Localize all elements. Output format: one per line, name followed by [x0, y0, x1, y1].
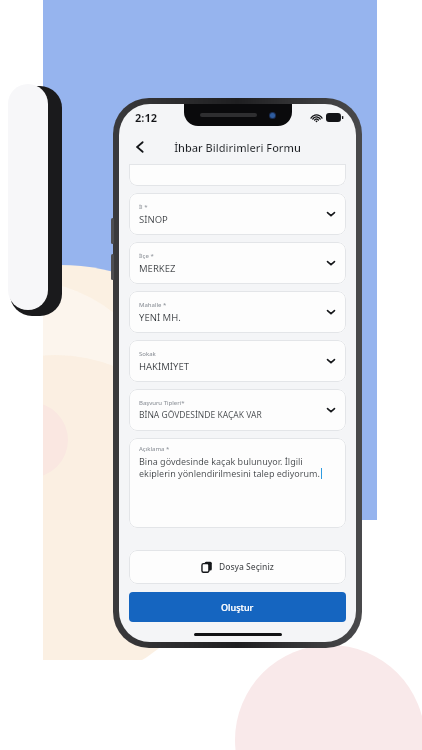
button[interactable]: Back [125, 132, 155, 162]
staticText: HAKİMİYET [139, 360, 189, 373]
staticText: İlçe * [139, 252, 154, 260]
button[interactable]: Sokak [129, 340, 346, 382]
button[interactable]: Oluştur [129, 592, 346, 622]
button[interactable]: Başvuru Tipleri* [129, 389, 346, 431]
staticText: İhbar Bildirimleri Formu [174, 140, 301, 155]
staticText: Oluştur [221, 601, 254, 613]
button[interactable]: İlçe * [129, 242, 346, 284]
staticText: Başvuru Tipleri* [139, 399, 185, 407]
button[interactable]: Mahalle * [129, 291, 346, 333]
staticText: Dosya Seçiniz [219, 561, 274, 573]
staticText: SİNOP [139, 213, 168, 226]
staticText: YENİ MH. [139, 311, 181, 324]
button[interactable]: Dosya Seçiniz [129, 550, 346, 584]
button[interactable]: İl * [129, 193, 346, 235]
staticText: Sokak [139, 350, 156, 358]
staticText: ekiplerin yönlendirilmesini talep ediyor… [139, 467, 320, 479]
staticText: 2:12 [135, 110, 157, 125]
staticText: Açıklama * [139, 445, 170, 453]
staticText: Mahalle * [139, 301, 167, 309]
staticText: İl * [139, 203, 148, 211]
button[interactable]: Açıklama * [129, 438, 346, 528]
staticText: MERKEZ [139, 262, 176, 275]
staticText: Bina gövdesinde kaçak bulunuyor. İlgili [139, 455, 303, 467]
staticText: BİNA GÖVDESİNDE KAÇAK VAR [139, 409, 262, 421]
button[interactable] [129, 164, 346, 186]
